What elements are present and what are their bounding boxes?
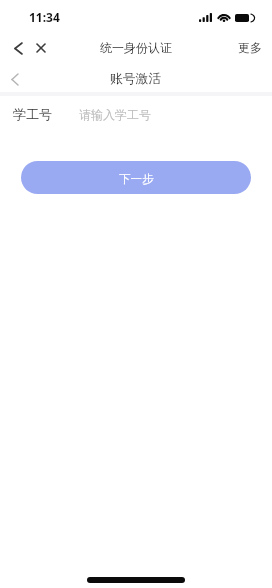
button[interactable]: Back	[6, 36, 30, 60]
button[interactable]: 学工号	[0, 100, 272, 128]
button[interactable]: 更多	[225, 34, 272, 61]
staticText: 11:34	[29, 9, 60, 25]
button[interactable]: Back	[3, 67, 27, 91]
staticText: 统一身份认证	[100, 40, 172, 55]
staticText: 请输入学工号	[79, 107, 151, 122]
button[interactable]: 下一步	[21, 161, 251, 194]
staticText: 学工号	[13, 106, 52, 122]
staticText: 更多	[238, 40, 262, 55]
staticText: 下一步	[119, 172, 154, 186]
button[interactable]: Close	[29, 36, 53, 60]
staticText: 账号激活	[110, 71, 162, 87]
